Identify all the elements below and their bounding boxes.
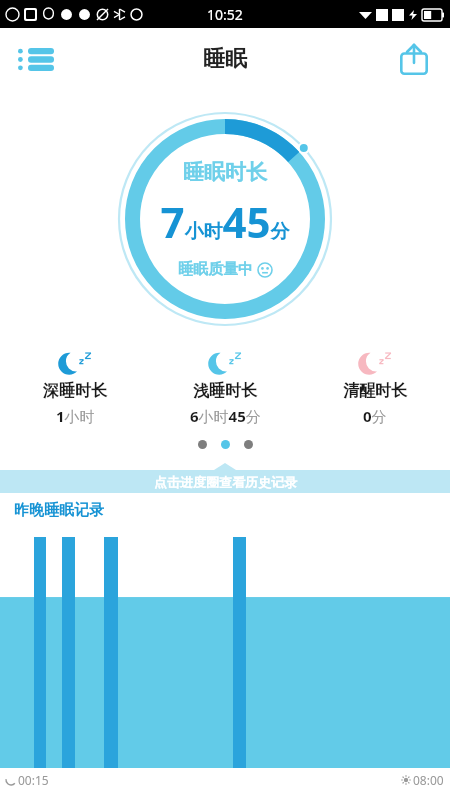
button[interactable]: 浅睡时长 xyxy=(150,348,300,426)
button[interactable]: 深睡时长 xyxy=(0,348,150,426)
button[interactable]: 清醒时长 xyxy=(300,348,450,426)
staticText: 深睡时长 xyxy=(43,381,107,401)
staticText: 睡眠时长 xyxy=(183,159,267,185)
staticText: 0分 xyxy=(363,406,387,426)
staticText: 点击进度圈查看历史记录 xyxy=(154,474,297,490)
staticText: 睡眠 xyxy=(203,45,247,73)
staticText: 睡眠质量中 xyxy=(178,260,253,279)
staticText: 00:15 xyxy=(18,772,49,788)
staticText: 10:52 xyxy=(207,5,243,24)
staticText: 7小时45分 xyxy=(160,193,290,250)
button[interactable]: List xyxy=(14,37,58,81)
staticText: 6小时45分 xyxy=(190,406,261,426)
button[interactable]: Sleep progress xyxy=(115,109,335,329)
staticText: 浅睡时长 xyxy=(193,381,257,401)
staticText: 清醒时长 xyxy=(343,381,407,401)
button[interactable]: Share xyxy=(392,37,436,81)
staticText: 昨晚睡眠记录 xyxy=(14,501,104,520)
staticText: 08:00 xyxy=(413,772,444,788)
button[interactable]: 点击进度圈查看历史记录 xyxy=(0,463,450,493)
staticText: 1小时 xyxy=(56,406,95,426)
